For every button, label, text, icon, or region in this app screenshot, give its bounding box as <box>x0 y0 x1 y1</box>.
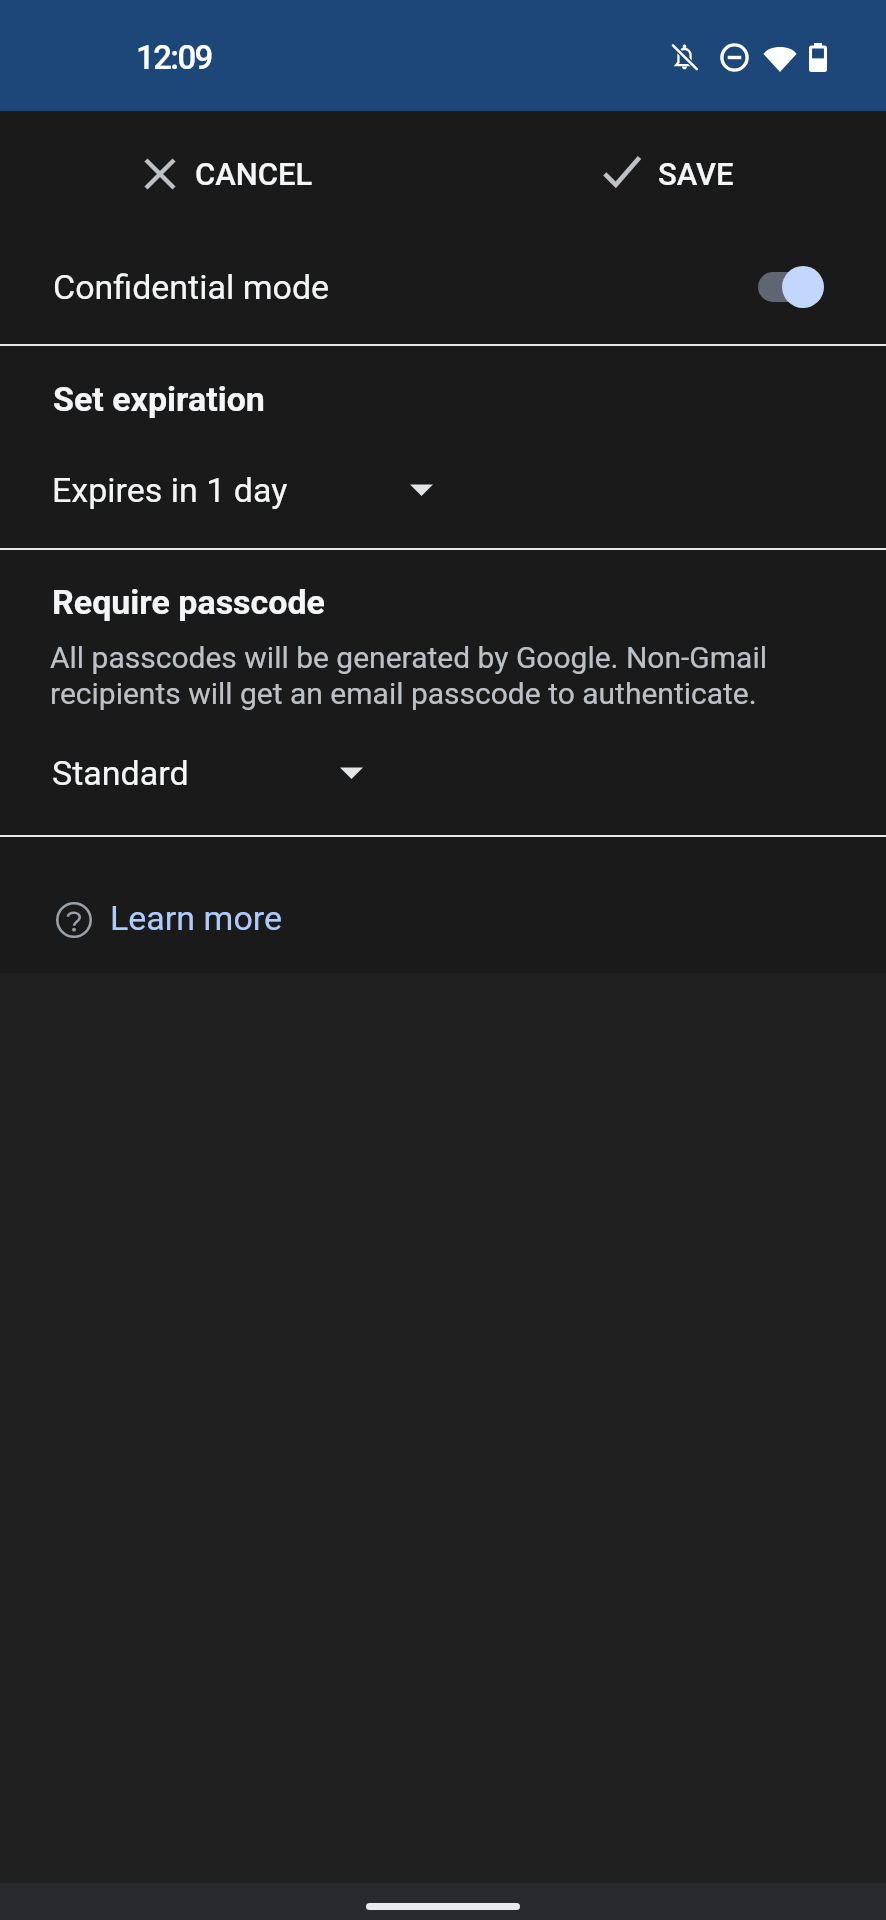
staticText: Learn more <box>110 898 283 938</box>
button[interactable]: Confidential mode <box>0 230 886 344</box>
other: Home <box>366 1903 520 1910</box>
staticText: Expires in 1 day <box>52 470 288 510</box>
staticText: CANCEL <box>195 156 313 192</box>
staticText: Set expiration <box>53 379 265 419</box>
button[interactable]: Standard <box>40 741 379 805</box>
other: Confidential mode, on <box>758 265 824 309</box>
staticText: Require passcode <box>52 582 325 622</box>
button[interactable]: CANCEL <box>129 144 328 204</box>
button[interactable]: Learn more <box>56 898 283 938</box>
button[interactable]: SAVE <box>587 143 749 205</box>
staticText: 12:09 <box>136 38 212 77</box>
staticText: SAVE <box>658 156 734 192</box>
button[interactable]: Expires in 1 day <box>40 458 449 522</box>
staticText: Standard <box>52 753 189 793</box>
staticText: All passcodes will be generated by Googl… <box>50 640 806 711</box>
staticText: Confidential mode <box>53 267 330 307</box>
